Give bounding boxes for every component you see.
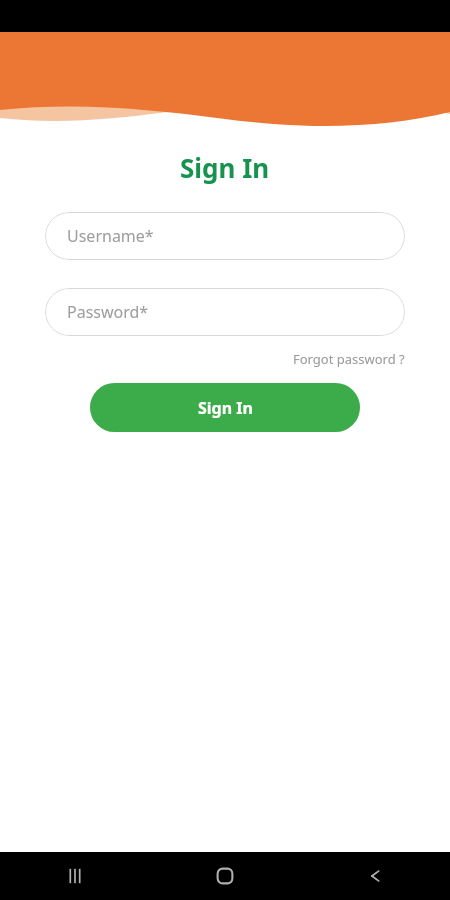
staticText: Username* — [67, 225, 154, 247]
staticText: Sign In — [180, 150, 270, 185]
staticText: Sign In — [198, 397, 253, 419]
button[interactable]: Sign In — [90, 383, 360, 432]
button[interactable]: Home — [150, 852, 300, 900]
button[interactable]: Password* — [45, 288, 405, 336]
button[interactable]: Back — [300, 852, 450, 900]
staticText: Password* — [67, 301, 149, 323]
button[interactable]: Recent apps — [0, 852, 150, 900]
button[interactable]: Forgot password ? — [45, 350, 405, 368]
staticText: Forgot password ? — [293, 350, 405, 368]
button[interactable]: Username* — [45, 212, 405, 260]
